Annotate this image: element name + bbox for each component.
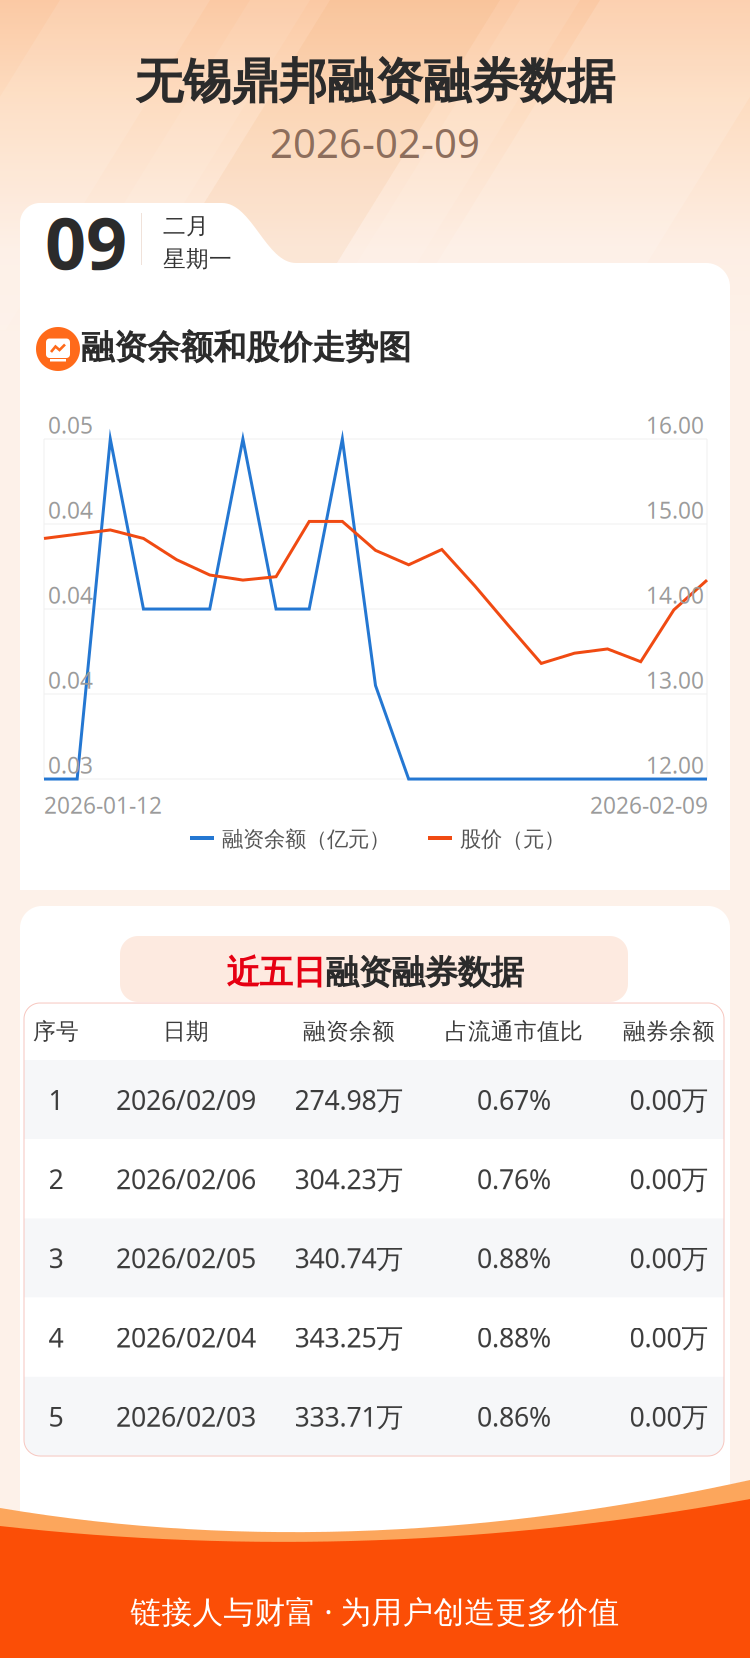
staticText: 15.00 [646, 495, 704, 525]
staticText: 股价（元） [460, 826, 565, 852]
staticText: 0.04 [48, 495, 93, 525]
staticText: 2026-01-12 [44, 790, 162, 820]
staticText: 0.00万 [629, 1082, 708, 1117]
staticText: 333.71万 [294, 1399, 403, 1434]
staticText: 2026/02/04 [116, 1319, 256, 1355]
staticText: 无锡鼎邦融资融券数据 [135, 52, 615, 111]
staticText: 2026/02/03 [116, 1399, 256, 1434]
staticText: 16.00 [646, 410, 704, 440]
staticText: 5 [48, 1399, 63, 1434]
staticText: 融券余额 [623, 1018, 715, 1045]
staticText: 占流通市值比 [445, 1018, 583, 1045]
staticText: 2026/02/06 [116, 1161, 256, 1196]
staticText: 13.00 [646, 665, 704, 695]
staticText: 2026-02-09 [270, 116, 480, 169]
staticText: 融资余额（亿元） [222, 826, 390, 852]
staticText: 0.04 [48, 580, 93, 610]
staticText: 0.00万 [629, 1319, 708, 1355]
staticText: 2026-02-09 [590, 790, 708, 820]
staticText: 日期 [163, 1018, 209, 1045]
staticText: 0.67% [477, 1082, 551, 1117]
staticText: 2026/02/05 [116, 1240, 256, 1276]
staticText: 序号 [33, 1018, 79, 1045]
staticText: 12.00 [646, 750, 704, 780]
staticText: 融资余额和股价走势图 [81, 327, 411, 368]
staticText: 二月 [163, 212, 209, 240]
staticText: 2026/02/09 [116, 1082, 256, 1117]
staticText: 304.23万 [294, 1161, 403, 1196]
staticText: 14.00 [646, 580, 704, 610]
staticText: 融资余额 [303, 1018, 395, 1045]
staticText: 链接人与财富 · 为用户创造更多价值 [130, 1591, 619, 1632]
staticText: 340.74万 [294, 1240, 403, 1276]
staticText: 3 [48, 1240, 63, 1276]
staticText: 0.00万 [629, 1240, 708, 1276]
staticText: 0.86% [477, 1399, 551, 1434]
staticText: 274.98万 [294, 1082, 403, 1117]
staticText: 0.03 [48, 750, 93, 780]
staticText: 09 [45, 194, 127, 290]
staticText: 343.25万 [294, 1319, 403, 1355]
staticText: 0.88% [477, 1319, 551, 1355]
staticText: 0.00万 [629, 1161, 708, 1196]
staticText: 融资融券数据 [325, 952, 523, 993]
staticText: 0.00万 [629, 1399, 708, 1434]
staticText: 星期一 [163, 245, 232, 273]
staticText: 2 [48, 1161, 63, 1196]
staticText: 0.76% [477, 1161, 551, 1196]
staticText: 0.88% [477, 1240, 551, 1276]
staticText: 近五日 [226, 952, 325, 993]
staticText: 4 [48, 1319, 63, 1355]
staticText: 0.04 [48, 665, 93, 695]
staticText: 1 [48, 1082, 63, 1117]
staticText: 0.05 [48, 410, 93, 440]
